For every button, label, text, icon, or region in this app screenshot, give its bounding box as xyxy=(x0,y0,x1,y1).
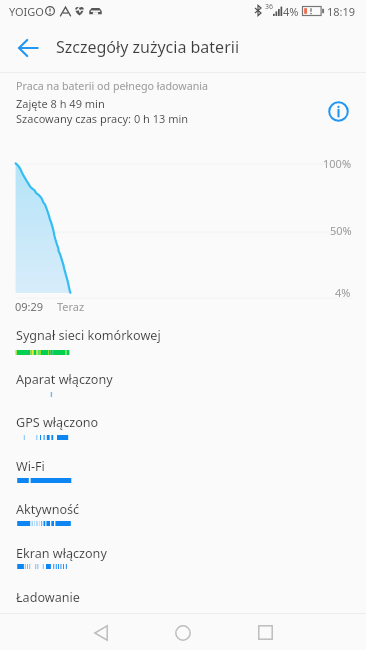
staticText: 4% xyxy=(335,285,351,300)
staticText: Teraz xyxy=(57,299,85,314)
staticText: 100% xyxy=(323,156,352,171)
staticText: Ładowanie xyxy=(16,589,80,606)
button[interactable]: Wi-Fi xyxy=(0,453,366,496)
button[interactable]: Sygnał sieci komórkowej xyxy=(0,322,366,365)
button[interactable]: Ekran główny xyxy=(161,613,205,650)
button[interactable]: Ładowanie xyxy=(0,584,366,627)
staticText: 09:29 xyxy=(15,299,44,314)
staticText: GPS włączono xyxy=(16,414,99,431)
staticText: 50% xyxy=(330,223,352,238)
staticText: YOIGO xyxy=(9,4,44,19)
button[interactable]: GPS włączono xyxy=(0,409,366,452)
button[interactable]: Wstecz xyxy=(79,613,123,650)
staticText: 18:19 xyxy=(327,4,356,19)
staticText: Sygnał sieci komórkowej xyxy=(16,327,161,344)
staticText: Ekran włączony xyxy=(16,545,107,562)
button[interactable]: Aktywność xyxy=(0,496,366,539)
button[interactable]: Aparat włączony xyxy=(0,366,366,409)
staticText: Zajęte 8 h 49 min xyxy=(16,96,105,111)
staticText: Szacowany czas pracy: 0 h 13 min xyxy=(16,111,189,126)
staticText: Szczegóły zużycia baterii xyxy=(56,36,240,58)
staticText: 4% xyxy=(283,4,299,19)
button[interactable]: Ostatnie aplikacje xyxy=(243,613,287,650)
staticText: 36 xyxy=(265,2,274,12)
button[interactable]: Informacje xyxy=(322,95,354,127)
button[interactable]: Ekran włączony xyxy=(0,540,366,583)
staticText: Aparat włączony xyxy=(16,371,113,388)
button[interactable]: Wstecz xyxy=(0,22,56,72)
staticText: Wi-Fi xyxy=(16,458,45,475)
staticText: Aktywność xyxy=(16,501,80,518)
staticText: Praca na baterii od pełnego ładowania xyxy=(16,79,209,94)
